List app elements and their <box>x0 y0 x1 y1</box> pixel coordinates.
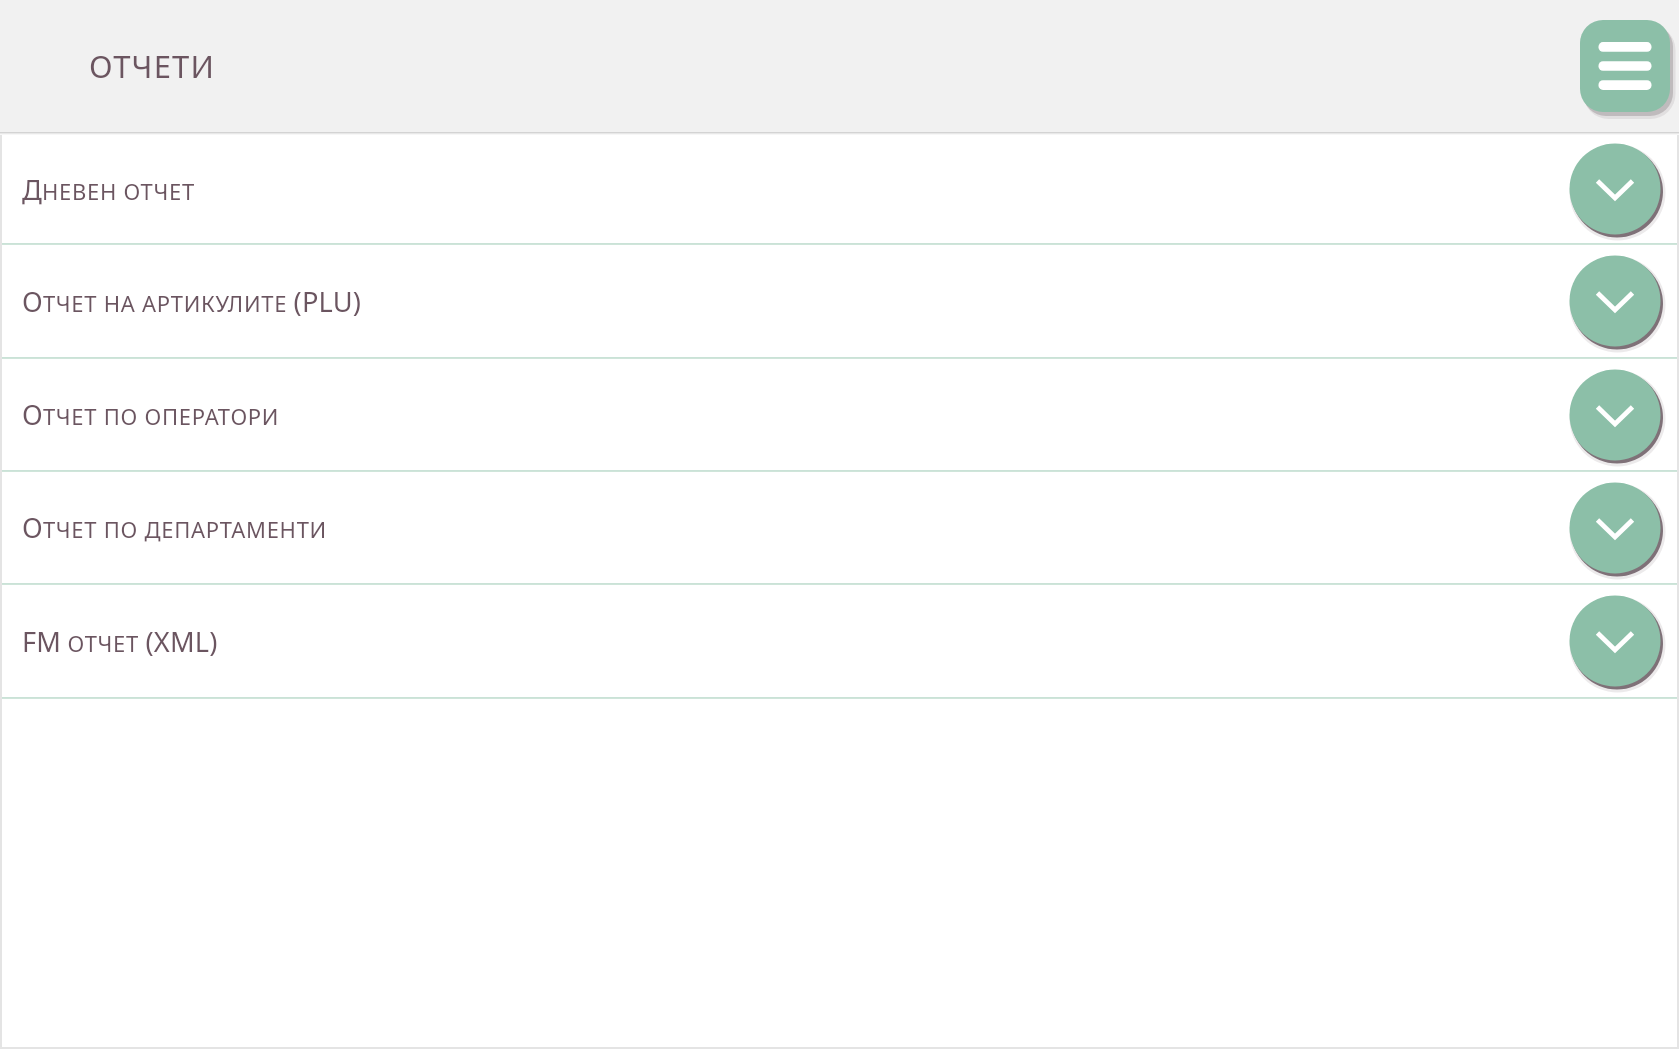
button[interactable]: Expand report <box>1563 363 1667 467</box>
button[interactable]: FM ОТЧЕТ (XML) <box>2 585 1677 697</box>
staticText: ОТЧЕТ ПО ДЕПАРТАМЕНТИ <box>22 509 327 546</box>
button[interactable]: ДНЕВЕН ОТЧЕТ <box>2 135 1677 243</box>
button[interactable]: Expand report <box>1563 589 1667 693</box>
button[interactable]: ОТЧЕТ НА АРТИКУЛИТЕ (PLU) <box>2 245 1677 357</box>
staticText: ОТЧЕТ ПО ОПЕРАТОРИ <box>22 396 280 433</box>
button[interactable]: ОТЧЕТ ПО ДЕПАРТАМЕНТИ <box>2 472 1677 583</box>
staticText: ДНЕВЕН ОТЧЕТ <box>22 171 195 208</box>
staticText: FM ОТЧЕТ (XML) <box>22 623 218 660</box>
button[interactable]: Expand report <box>1563 137 1667 241</box>
button[interactable]: ОТЧЕТ ПО ОПЕРАТОРИ <box>2 359 1677 470</box>
staticText: ОТЧЕТ НА АРТИКУЛИТЕ (PLU) <box>22 283 362 320</box>
button[interactable]: Expand report <box>1563 476 1667 580</box>
button[interactable]: Open menu <box>1576 16 1674 116</box>
staticText: ОТЧЕТИ <box>89 45 216 87</box>
button[interactable]: Expand report <box>1563 249 1667 353</box>
